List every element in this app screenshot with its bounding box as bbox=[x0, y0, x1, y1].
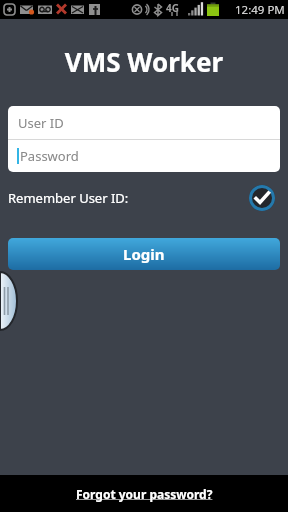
button[interactable] bbox=[248, 184, 276, 212]
staticText: 4G bbox=[166, 1, 179, 15]
button[interactable]: Password bbox=[8, 140, 280, 172]
staticText: 12:49 PM bbox=[235, 2, 285, 18]
button[interactable] bbox=[0, 272, 18, 330]
staticText: User ID bbox=[18, 114, 64, 132]
button[interactable]: User ID bbox=[8, 106, 280, 139]
staticText: Remember User ID: bbox=[8, 189, 129, 207]
staticText: VMS Worker bbox=[0, 44, 288, 79]
button[interactable]: Forgot your password? bbox=[76, 486, 213, 502]
staticText: Login bbox=[123, 244, 165, 264]
staticText: Password bbox=[20, 147, 79, 165]
button[interactable]: Login bbox=[8, 238, 280, 270]
